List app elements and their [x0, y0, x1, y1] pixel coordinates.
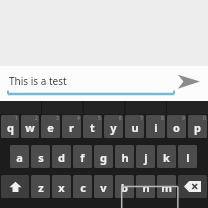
button[interactable]: Backspace — [178, 175, 207, 198]
staticText: 7 — [140, 115, 143, 122]
button[interactable]: z — [31, 175, 50, 198]
button[interactable]: b — [115, 175, 134, 198]
staticText: b — [121, 180, 128, 195]
staticText: 3 — [56, 115, 59, 122]
button[interactable]: c — [73, 175, 92, 198]
staticText: p — [194, 120, 201, 135]
button[interactable]: Shift — [1, 175, 29, 198]
button[interactable]: This is a test — [0, 66, 168, 101]
button[interactable]: f — [73, 145, 92, 168]
staticText: y — [110, 120, 117, 135]
button[interactable]: g — [94, 145, 113, 168]
staticText: t — [90, 120, 95, 135]
button[interactable]: s — [31, 145, 50, 168]
staticText: 4 — [77, 115, 80, 122]
staticText: 6 — [119, 115, 122, 122]
button[interactable]: d — [52, 145, 71, 168]
button[interactable]: t — [83, 115, 102, 138]
button[interactable]: i — [146, 115, 165, 138]
button[interactable]: y — [104, 115, 123, 138]
staticText: 5 — [98, 115, 101, 122]
staticText: s — [38, 150, 44, 165]
button[interactable]: q — [1, 115, 19, 138]
staticText: h — [121, 150, 129, 165]
staticText: x — [58, 180, 65, 195]
button[interactable]: v — [94, 175, 113, 198]
button[interactable]: j — [136, 145, 155, 168]
staticText: w — [25, 120, 35, 135]
staticText: 1 — [15, 115, 18, 122]
staticText: o — [173, 120, 180, 135]
staticText: f — [80, 150, 85, 165]
button[interactable]: p — [188, 115, 207, 138]
staticText: g — [100, 150, 107, 165]
staticText: z — [38, 180, 44, 195]
staticText: u — [131, 120, 139, 135]
button[interactable]: k — [157, 145, 176, 168]
staticText: n — [142, 180, 150, 195]
button[interactable]: w — [21, 115, 39, 138]
staticText: i — [154, 120, 158, 135]
staticText: a — [16, 150, 23, 165]
staticText: m — [161, 180, 172, 195]
button[interactable]: m — [157, 175, 176, 198]
staticText: l — [186, 150, 190, 165]
staticText: k — [163, 150, 170, 165]
staticText: c — [80, 180, 86, 195]
button[interactable]: r — [62, 115, 81, 138]
staticText: This is a test — [9, 74, 67, 88]
button[interactable]: o — [167, 115, 186, 138]
staticText: 9 — [182, 115, 185, 122]
staticText: 2 — [35, 115, 38, 122]
button[interactable]: u — [125, 115, 144, 138]
staticText: r — [69, 120, 74, 135]
button[interactable]: h — [115, 145, 134, 168]
staticText: 0 — [203, 115, 206, 122]
button[interactable]: l — [178, 145, 197, 168]
staticText: v — [100, 180, 107, 195]
staticText: e — [47, 120, 54, 135]
button[interactable]: Send — [168, 66, 208, 101]
button[interactable]: n — [136, 175, 155, 198]
button[interactable]: e — [41, 115, 60, 138]
staticText: q — [7, 120, 14, 135]
staticText: d — [58, 150, 65, 165]
button[interactable]: x — [52, 175, 71, 198]
staticText: 8 — [161, 115, 164, 122]
button[interactable]: a — [10, 145, 29, 168]
staticText: j — [144, 150, 148, 165]
